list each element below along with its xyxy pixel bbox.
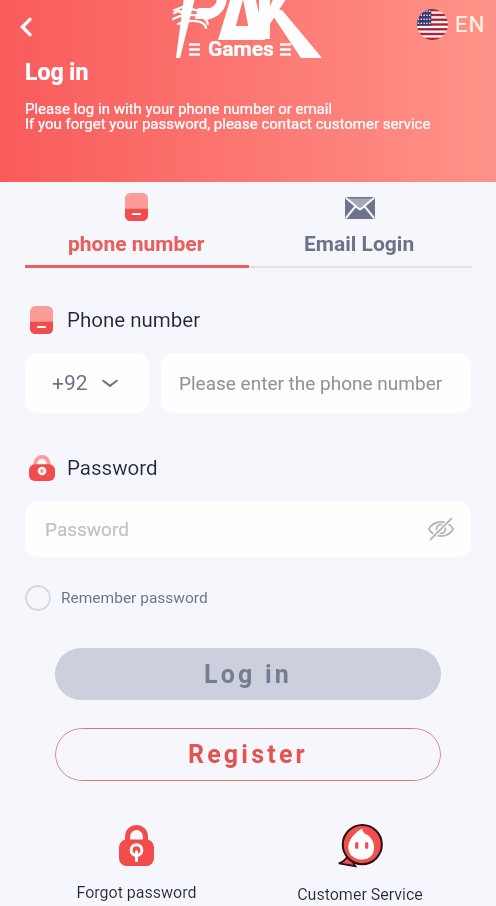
- button[interactable]: Password: [25, 501, 471, 557]
- staticText: Log in: [25, 59, 89, 86]
- staticText: Register: [188, 740, 308, 769]
- button[interactable]: Please enter the phone number: [161, 353, 471, 413]
- button[interactable]: Customer Service: [248, 823, 471, 904]
- staticText: EN: [455, 12, 486, 38]
- staticText: Forgot password: [76, 883, 197, 902]
- button[interactable]: Forgot password: [25, 825, 248, 902]
- button[interactable]: +92: [25, 353, 149, 413]
- button[interactable]: Log in: [55, 648, 441, 700]
- staticText: Password: [45, 518, 129, 540]
- staticText: Remember password: [61, 589, 208, 607]
- staticText: Log in: [204, 660, 293, 689]
- staticText: Password: [67, 456, 158, 480]
- button[interactable]: phone number: [25, 182, 248, 268]
- staticText: Games: [208, 37, 274, 62]
- button[interactable]: Email Login: [248, 182, 471, 268]
- staticText: Please log in with your phone number or …: [25, 100, 333, 118]
- button[interactable]: Remember password: [25, 583, 208, 613]
- staticText: Please enter the phone number: [179, 372, 443, 394]
- button[interactable]: Language EN: [417, 9, 486, 40]
- staticText: If you forget your password, please cont…: [25, 115, 431, 133]
- button[interactable]: Back: [8, 9, 44, 45]
- staticText: phone number: [68, 232, 205, 257]
- button[interactable]: Register: [55, 728, 441, 781]
- staticText: Email Login: [304, 232, 415, 257]
- button[interactable]: Show password: [425, 513, 457, 545]
- staticText: Customer Service: [297, 885, 423, 904]
- staticText: +92: [52, 371, 88, 396]
- staticText: Phone number: [67, 308, 201, 332]
